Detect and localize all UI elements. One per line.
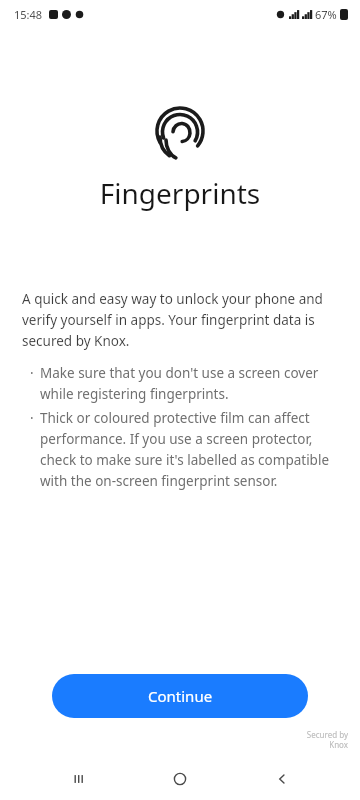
staticText: Fingerprints: [0, 174, 360, 212]
staticText: A quick and easy way to unlock your phon…: [22, 290, 338, 350]
staticText: ·: [30, 409, 34, 427]
button[interactable]: Back: [258, 758, 306, 800]
staticText: 67%: [315, 7, 337, 22]
staticText: Continue: [148, 686, 213, 706]
staticText: 15:48: [14, 7, 43, 22]
button[interactable]: Home: [156, 758, 204, 800]
staticText: Thick or coloured protective film can af…: [40, 409, 338, 490]
staticText: ·: [30, 364, 34, 382]
button[interactable]: Continue: [52, 674, 308, 718]
button[interactable]: Recents: [54, 758, 102, 800]
staticText: Make sure that you don't use a screen co…: [40, 364, 338, 403]
staticText: Secured by Knox: [306, 729, 348, 750]
